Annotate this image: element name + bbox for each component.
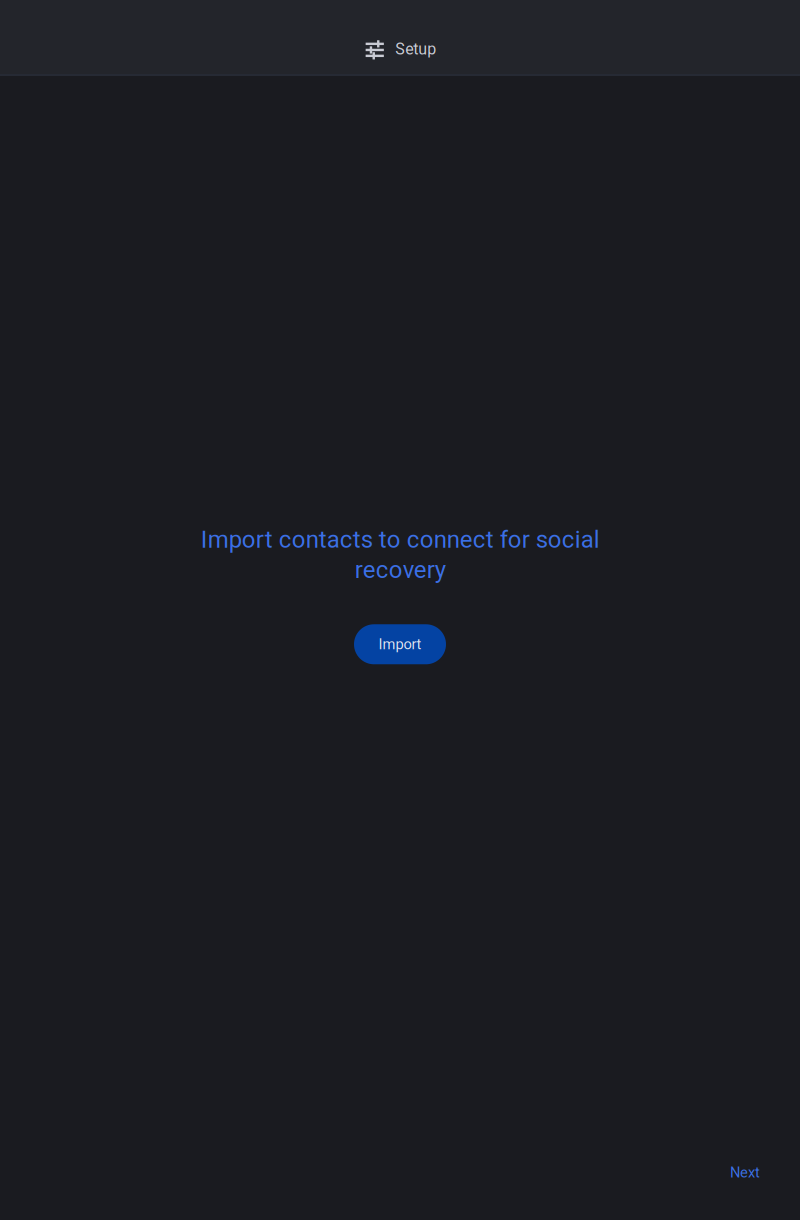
staticText: Import contacts to connect for social re… xyxy=(200,525,599,584)
staticText: Next xyxy=(730,1164,760,1181)
button[interactable]: Import xyxy=(354,624,446,664)
button[interactable]: Next xyxy=(716,1154,774,1191)
staticText: Import xyxy=(378,636,421,653)
staticText: Setup xyxy=(395,40,436,58)
